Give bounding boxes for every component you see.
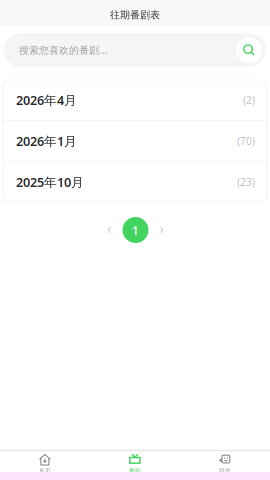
button[interactable]: 2025年10月 xyxy=(3,162,267,202)
button[interactable]: 下一页 xyxy=(148,217,174,243)
button[interactable]: 我的 xyxy=(180,454,270,474)
staticText: 首页 xyxy=(39,467,51,474)
staticText: 1 xyxy=(131,221,139,239)
button[interactable]: 搜索 xyxy=(236,37,262,63)
staticText: 2025年10月 xyxy=(16,173,84,191)
button[interactable]: 上一页 xyxy=(96,217,122,243)
button[interactable]: 2026年4月 xyxy=(3,80,267,120)
staticText: 2026年1月 xyxy=(16,132,77,150)
staticText: (2) xyxy=(243,93,255,107)
button[interactable]: 2026年1月 xyxy=(3,121,267,161)
staticText: 搜索您喜欢的番剧... xyxy=(19,43,108,57)
staticText: 番剧 xyxy=(129,467,141,474)
staticText: (70) xyxy=(237,134,255,148)
staticText: 往期番剧表 xyxy=(110,9,160,21)
button[interactable]: 1 xyxy=(122,217,148,243)
staticText: 2026年4月 xyxy=(16,91,77,109)
staticText: (23) xyxy=(237,175,255,189)
staticText: 我的 xyxy=(219,467,231,474)
button[interactable]: 首页 xyxy=(0,454,90,474)
button[interactable]: 番剧 xyxy=(90,454,180,474)
